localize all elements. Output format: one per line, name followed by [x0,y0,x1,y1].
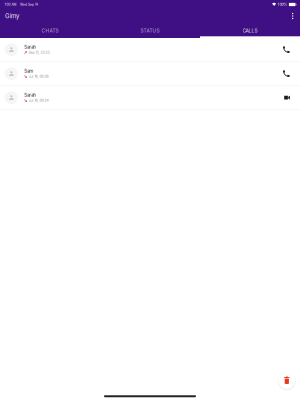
button[interactable]: STATUS [100,26,200,38]
staticText: 100% [277,2,287,7]
button[interactable]: Clear call log [278,371,296,390]
button[interactable]: Sarah [0,38,300,62]
button[interactable]: More options [287,9,298,26]
button[interactable]: CALLS [200,26,300,38]
button[interactable]: Sarah [0,86,300,110]
staticText: CALLS [242,28,257,34]
button[interactable]: Sam [0,62,300,86]
staticText: STATUS [140,28,159,34]
staticText: CHATS [41,28,58,34]
staticText: Jul 18, 00:36 [28,74,48,79]
staticText: Sam [24,69,33,74]
staticText: 1:00 AM [5,3,17,6]
staticText: Sep 13, 23:23 [28,50,49,55]
staticText: Gimy [5,12,19,20]
staticText: Sarah [24,45,36,50]
staticText: Jul 18, 00:24 [28,98,48,103]
button[interactable]: CHATS [0,26,100,38]
staticText: Sarah [24,93,36,98]
staticText: Wed Sep 14 [20,3,38,6]
